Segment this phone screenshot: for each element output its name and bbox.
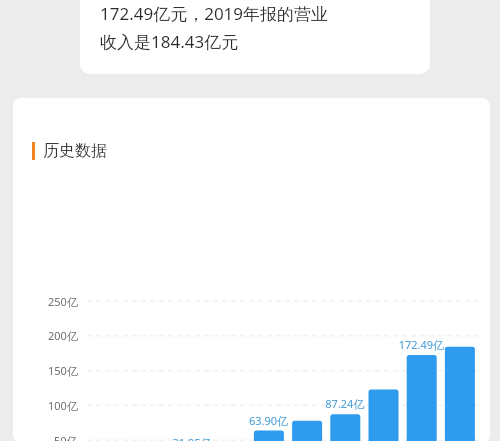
button[interactable]: 历史数据 (32, 142, 96, 162)
button[interactable]: 172.49亿元，2019年报的营业 收入是184.43亿元 (80, 0, 430, 74)
staticText: 172.49亿元，2019年报的营业 收入是184.43亿元 (100, 2, 329, 53)
staticText: 历史数据 (43, 141, 107, 161)
button[interactable]: 历史数据 (13, 98, 490, 441)
